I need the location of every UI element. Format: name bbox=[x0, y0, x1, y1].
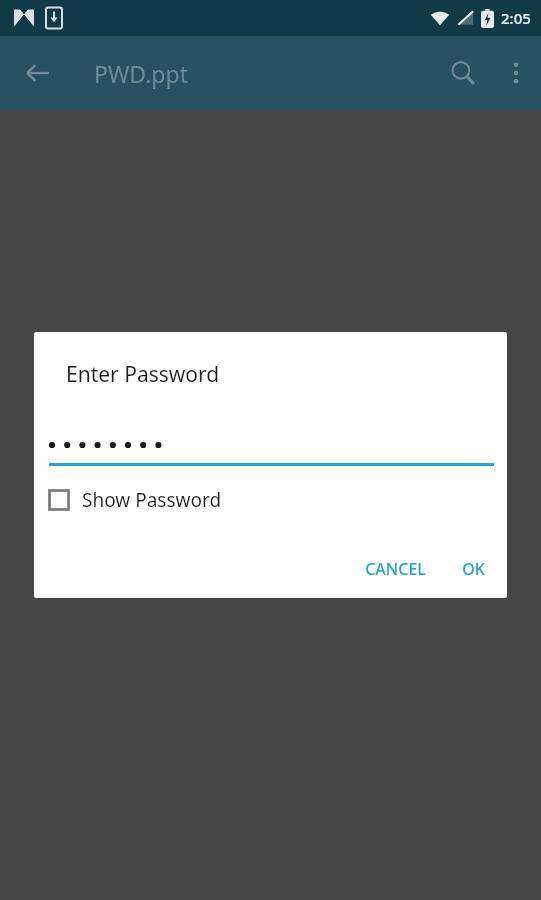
button[interactable]: Back bbox=[12, 47, 64, 99]
staticText: Show Password bbox=[82, 487, 222, 513]
button[interactable]: Show Password bbox=[48, 482, 230, 518]
staticText: Enter Password bbox=[66, 360, 220, 389]
staticText: CANCEL bbox=[365, 558, 426, 580]
staticText: 2:05 bbox=[501, 8, 531, 28]
staticText: OK bbox=[462, 558, 485, 580]
staticText: PWD.ppt bbox=[94, 58, 188, 89]
button[interactable]: More options bbox=[491, 48, 541, 98]
button[interactable]: OK bbox=[448, 548, 499, 590]
button[interactable]: Search bbox=[435, 45, 491, 101]
button[interactable]: CANCEL bbox=[351, 548, 440, 590]
